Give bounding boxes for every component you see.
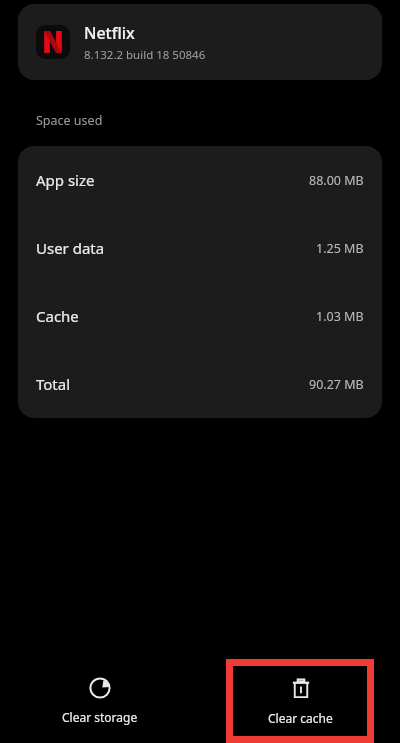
button[interactable]: User data <box>18 214 382 282</box>
button[interactable]: Clear cache <box>226 659 374 743</box>
staticText: Space used <box>36 112 103 129</box>
staticText: 1.25 MB <box>316 240 364 257</box>
other: Clear cache <box>289 677 313 701</box>
button[interactable]: Netflix <box>18 4 382 80</box>
button[interactable]: App size <box>18 146 382 214</box>
staticText: Total <box>36 374 71 394</box>
staticText: 90.27 MB <box>309 376 364 393</box>
staticText: Cache <box>36 306 79 326</box>
staticText: Netflix <box>84 22 135 44</box>
button[interactable]: Total <box>18 350 382 418</box>
staticText: Clear cache <box>268 710 333 726</box>
staticText: 88.00 MB <box>309 172 364 189</box>
other: Clear storage <box>88 676 112 700</box>
button[interactable]: Clear storage <box>0 640 200 743</box>
staticText: Clear storage <box>62 709 138 725</box>
staticText: App size <box>36 170 95 190</box>
button[interactable]: Cache <box>18 282 382 350</box>
staticText: 1.03 MB <box>316 308 364 325</box>
staticText: User data <box>36 238 105 258</box>
staticText: 8.132.2 build 18 50846 <box>84 47 206 63</box>
